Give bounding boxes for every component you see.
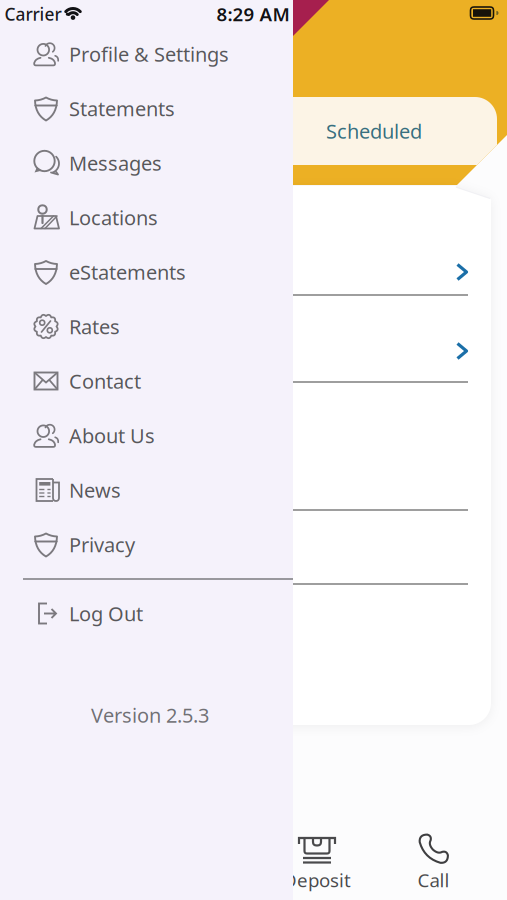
staticText: Rates [69, 313, 120, 340]
button[interactable]: Rates [0, 302, 290, 350]
button[interactable]: Locations [0, 193, 290, 241]
staticText: Statements [69, 95, 175, 122]
staticText: Scheduled [326, 118, 422, 144]
button[interactable]: Call [378, 810, 488, 900]
staticText: 8:29 AM [216, 2, 289, 26]
button[interactable]: Scheduled [272, 103, 476, 159]
staticText: Privacy [69, 531, 135, 558]
button[interactable]: Privacy [0, 520, 290, 568]
staticText: Deposit [283, 868, 351, 892]
button[interactable]: Deposit [262, 810, 372, 900]
button[interactable]: Log Out [0, 589, 290, 637]
button[interactable]: Contact [0, 357, 290, 405]
staticText: Messages [69, 150, 162, 176]
button[interactable]: Scheduled item 2 [20, 295, 491, 382]
button[interactable]: Statements [0, 84, 290, 132]
staticText: Locations [69, 204, 158, 231]
staticText: Version 2.5.3 [91, 702, 209, 728]
staticText: Call [417, 868, 449, 892]
staticText: Log Out [69, 600, 143, 627]
button[interactable]: Profile & Settings [0, 30, 290, 78]
staticText: Profile & Settings [69, 41, 229, 67]
staticText: Carrier [4, 2, 61, 25]
staticText: eStatements [69, 259, 186, 285]
button[interactable]: About Us [0, 411, 290, 459]
button[interactable]: eStatements [0, 248, 290, 296]
button[interactable]: Messages [0, 139, 290, 187]
staticText: News [69, 477, 121, 503]
button[interactable]: Scheduled item 1 [20, 186, 491, 295]
staticText: About Us [69, 422, 155, 449]
button[interactable]: News [0, 466, 290, 514]
staticText: Contact [69, 368, 141, 394]
